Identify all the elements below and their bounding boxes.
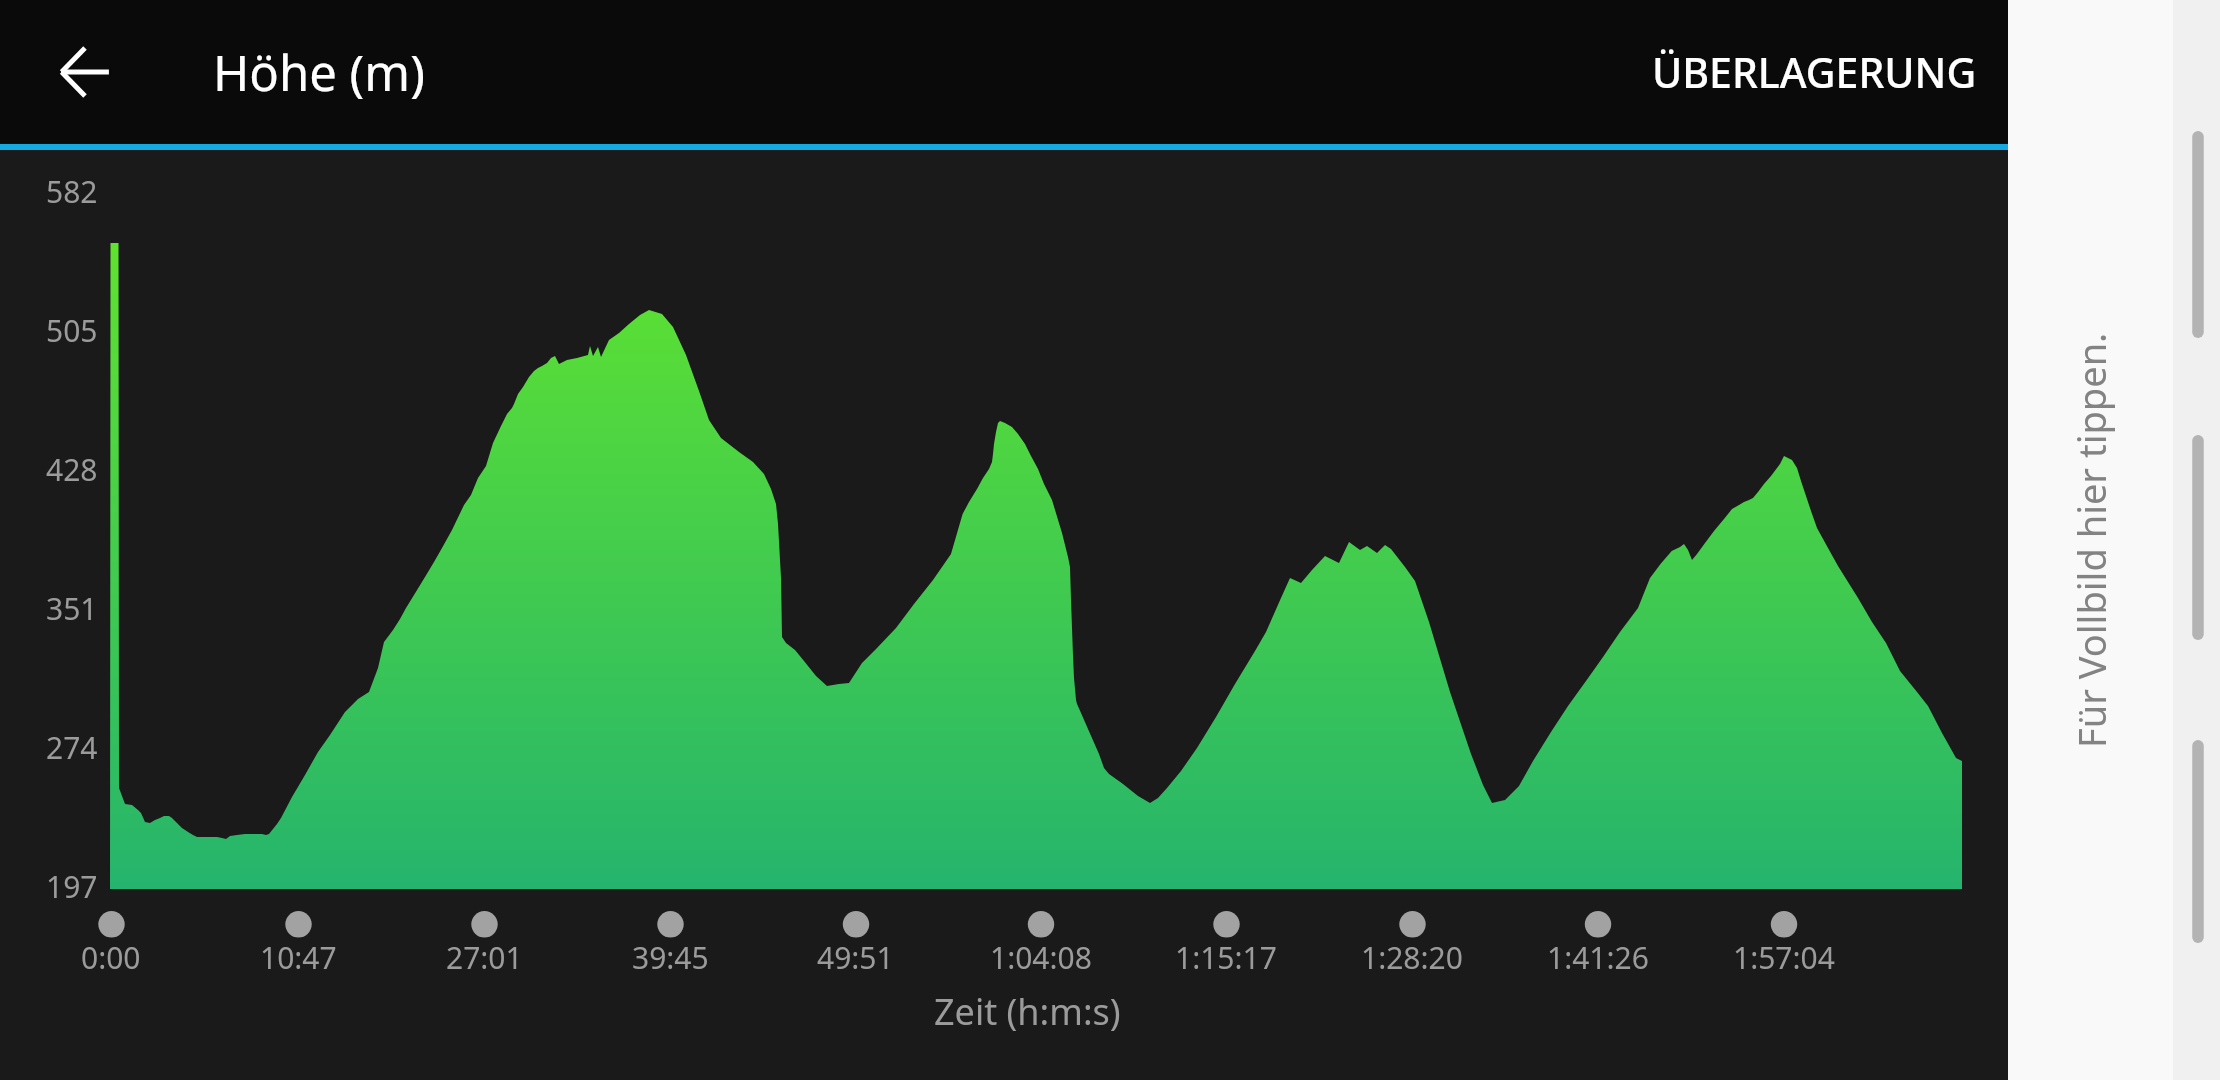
staticText: Zeit (h:m:s) <box>934 987 1121 1036</box>
staticText: 351 <box>46 588 98 629</box>
button[interactable]: ÜBERLAGERUNG <box>1616 20 2008 124</box>
button[interactable]: Back <box>30 17 140 127</box>
staticText: 49:51 <box>817 937 894 978</box>
staticText: ÜBERLAGERUNG <box>1652 44 1977 100</box>
staticText: 1:41:26 <box>1547 937 1649 978</box>
staticText: Für Vollbild hier tippen. <box>2065 332 2117 748</box>
staticText: 39:45 <box>632 937 709 978</box>
staticText: Höhe (m) <box>213 39 425 106</box>
staticText: 10:47 <box>260 937 337 978</box>
staticText: 428 <box>46 449 98 490</box>
button[interactable]: Für Vollbild hier tippen. <box>2008 0 2173 1080</box>
staticText: 1:15:17 <box>1175 937 1277 978</box>
staticText: 1:04:08 <box>990 937 1092 978</box>
staticText: 582 <box>46 171 98 212</box>
staticText: 1:28:20 <box>1361 937 1463 978</box>
staticText: 505 <box>46 310 98 351</box>
staticText: 1:57:04 <box>1733 937 1835 978</box>
staticText: 197 <box>46 866 98 907</box>
staticText: 274 <box>46 727 98 768</box>
staticText: 27:01 <box>446 937 523 978</box>
staticText: 0:00 <box>81 937 141 978</box>
